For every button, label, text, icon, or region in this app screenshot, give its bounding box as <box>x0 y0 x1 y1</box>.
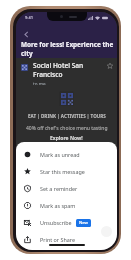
button[interactable]: Social Hotel San Francisco <box>16 58 117 85</box>
staticText: New <box>79 220 88 226</box>
button[interactable]: Explore Now! <box>50 135 83 142</box>
button[interactable]: Unsubscribe <box>16 214 117 231</box>
staticText: 40% off chef's choice menu tasting <box>26 125 108 132</box>
button[interactable]: Compose <box>101 226 112 237</box>
button[interactable]: Back <box>23 31 30 38</box>
staticText: Unsubscribe <box>40 219 72 226</box>
staticText: Mark as spam <box>40 202 76 209</box>
staticText: Print or Share <box>40 236 75 243</box>
button[interactable]: Print or Share <box>16 231 117 248</box>
button[interactable]: Mark as unread <box>16 146 117 163</box>
button[interactable]: Star this message <box>16 163 117 180</box>
button[interactable]: Star <box>107 63 113 69</box>
staticText: Mark as unread <box>40 151 80 158</box>
staticText: EAT | DRINK | ACTIVITIES | TOURS <box>28 113 106 119</box>
staticText: Social Hotel San Francisco <box>33 61 107 79</box>
button[interactable]: Mark as spam <box>16 197 117 214</box>
staticText: Explore Now! <box>50 135 83 142</box>
button[interactable]: Set a reminder <box>16 180 117 197</box>
staticText: Set a reminder <box>40 185 78 192</box>
staticText: to me <box>33 81 46 85</box>
staticText: Star this message <box>40 168 85 175</box>
staticText: More for less! Experience the city <box>21 40 117 58</box>
staticText: 9:41 <box>25 15 33 20</box>
